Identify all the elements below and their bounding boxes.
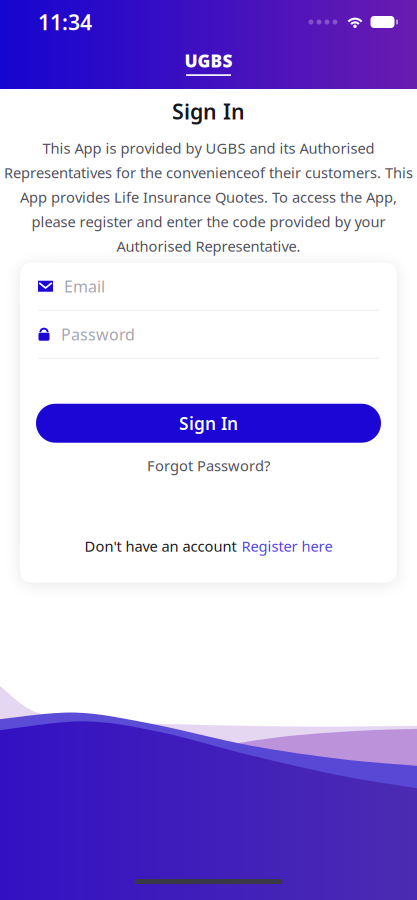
button[interactable]: Sign In	[36, 404, 381, 443]
staticText: please register and enter the code provi…	[31, 212, 385, 231]
staticText: Forgot Password?	[147, 456, 270, 475]
staticText: Sign In	[179, 412, 238, 435]
staticText: App provides Life Insurance Quotes. To a…	[20, 187, 397, 207]
staticText: Email	[64, 276, 105, 297]
button[interactable]: Forgot Password?	[137, 450, 280, 481]
staticText: This App is provided by UGBS and its Aut…	[42, 138, 374, 158]
staticText: Register here	[241, 536, 332, 556]
staticText: Representatives for the convenienceof th…	[4, 163, 413, 182]
button[interactable]: Email	[20, 263, 397, 311]
staticText: Password	[61, 324, 135, 345]
staticText: Authorised Representative.	[116, 236, 300, 256]
button[interactable]: Password	[20, 311, 397, 359]
staticText: UGBS	[184, 49, 232, 72]
staticText: 11:34	[38, 8, 92, 36]
staticText: Don't have an account	[84, 536, 236, 556]
button[interactable]: Don't have an account	[84, 532, 332, 560]
staticText: Sign In	[172, 97, 245, 125]
